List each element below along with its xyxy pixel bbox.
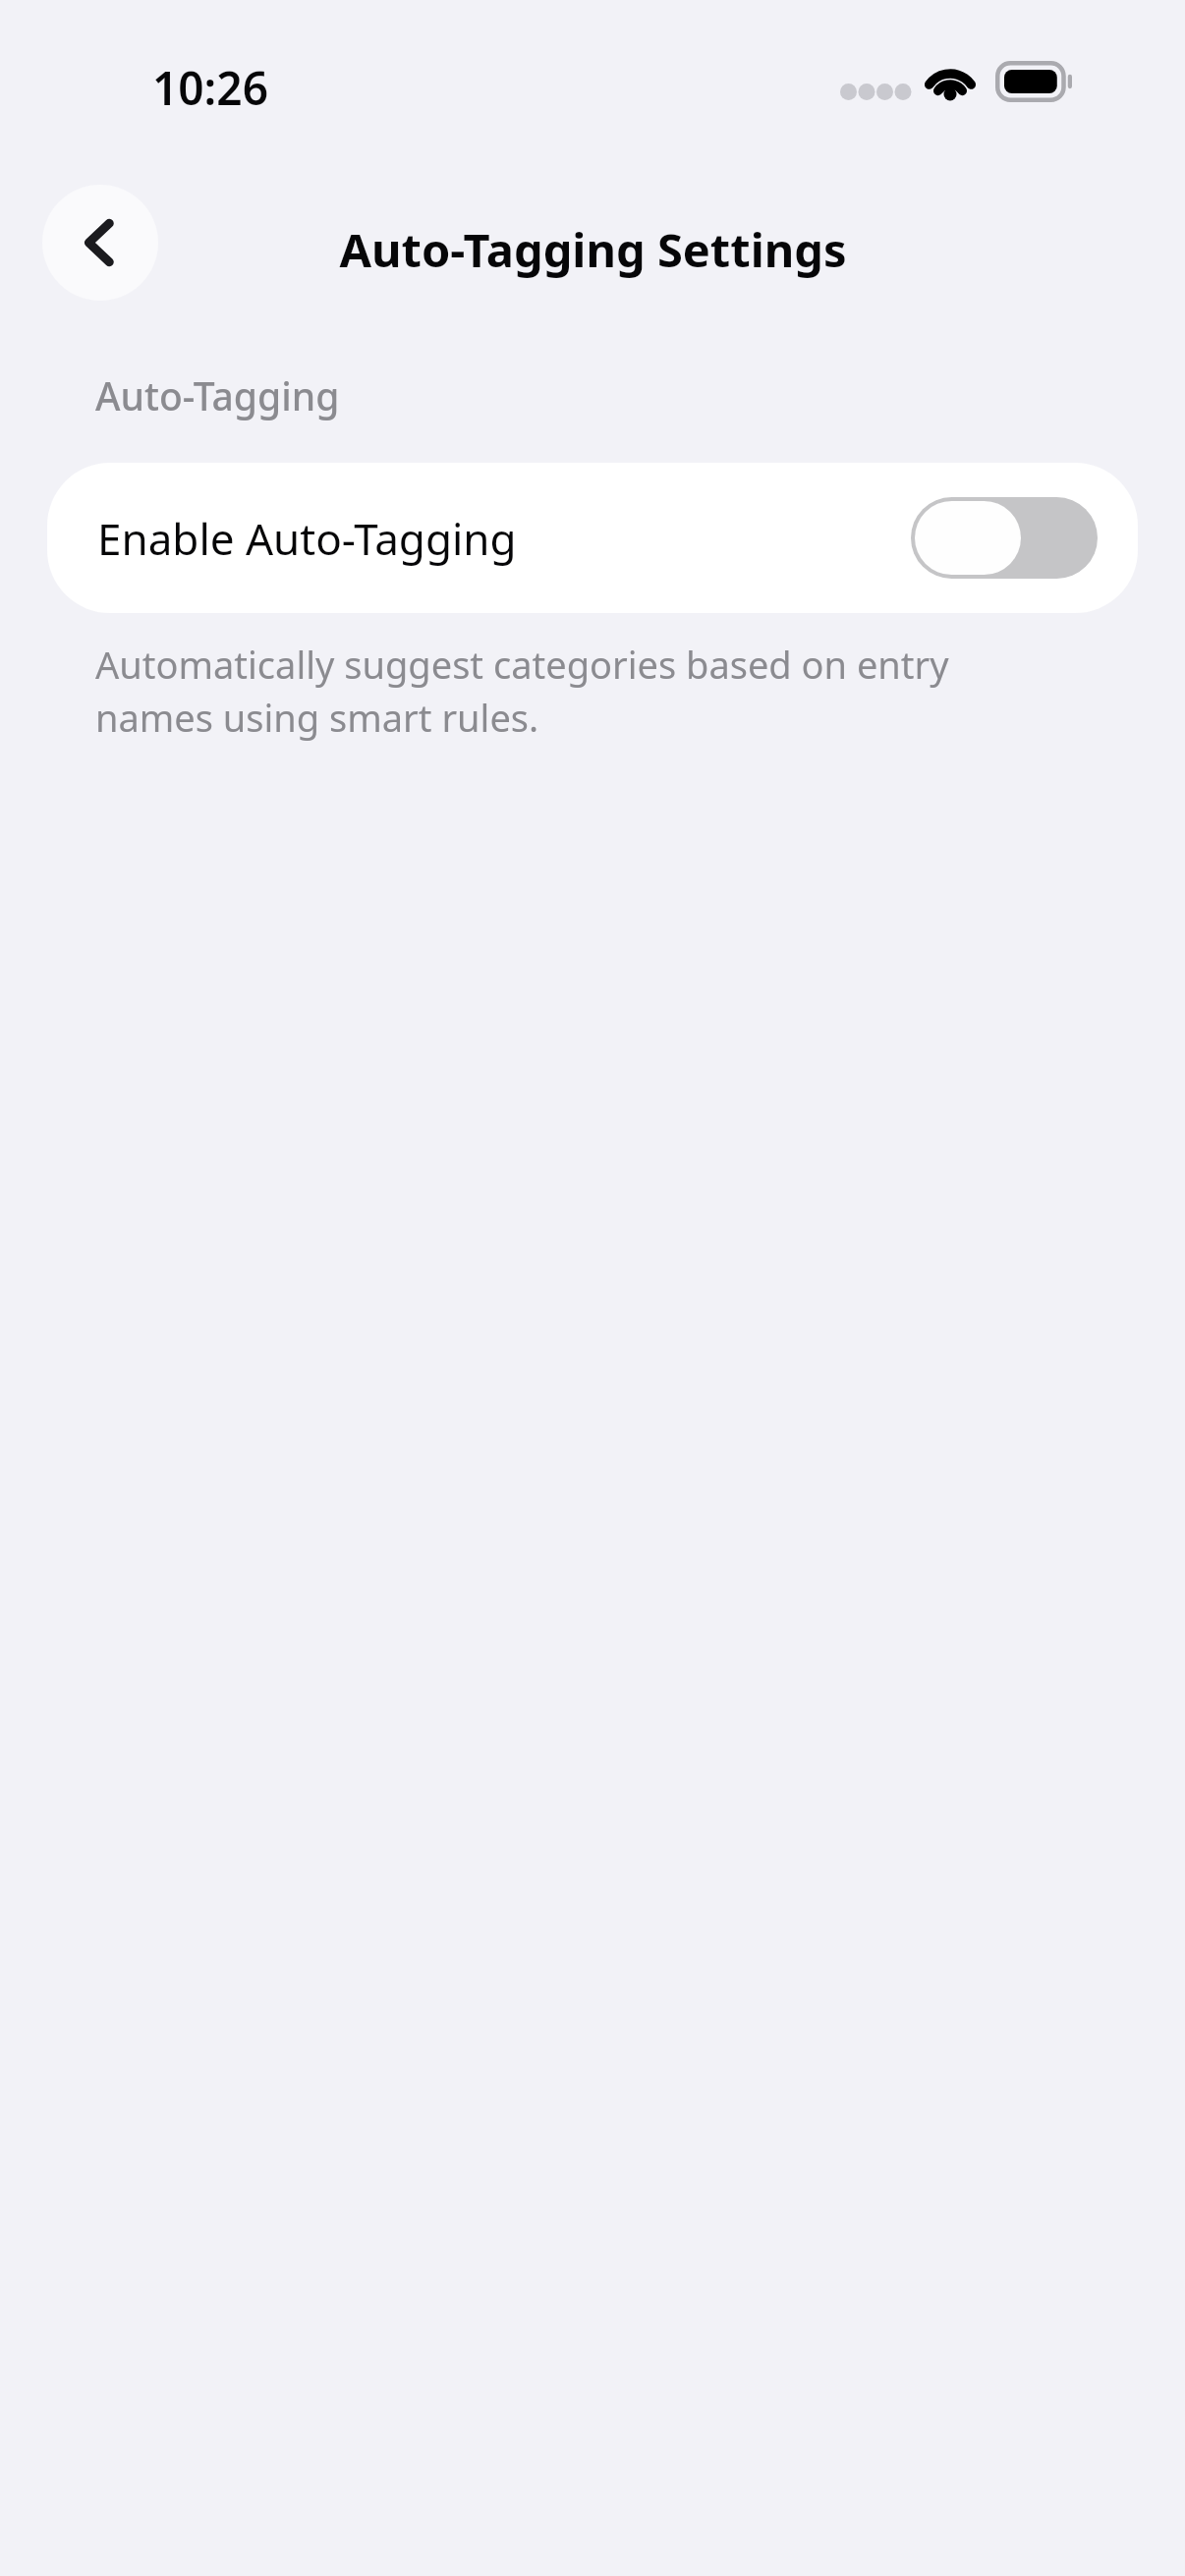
staticText: Automatically suggest categories based o…: [95, 639, 949, 743]
staticText: Enable Auto-Tagging: [97, 509, 517, 568]
staticText: 10:26: [152, 57, 268, 119]
staticText: Auto-Tagging Settings: [339, 218, 847, 281]
button[interactable]: Back: [42, 185, 158, 301]
staticText: Auto-Tagging: [95, 369, 340, 421]
button[interactable]: Enable Auto-Tagging: [47, 463, 1138, 613]
button[interactable]: Enable Auto-Tagging: [911, 497, 1098, 579]
